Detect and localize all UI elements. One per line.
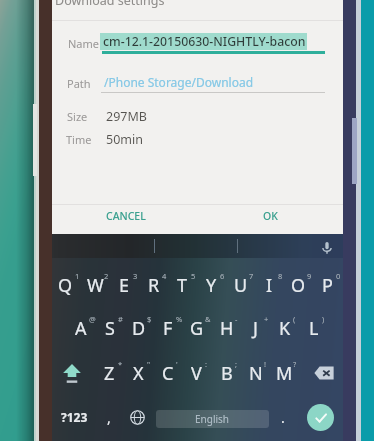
staticText: U: [234, 273, 248, 298]
button[interactable]: .: [267, 397, 299, 437]
button[interactable]: O: [284, 264, 313, 306]
button[interactable]: Enter: [307, 404, 334, 431]
button[interactable]: S: [95, 307, 124, 349]
staticText: T: [177, 273, 188, 298]
staticText: English: [195, 412, 230, 426]
button[interactable]: C: [153, 352, 182, 394]
staticText: ,: [107, 408, 111, 427]
staticText: 0: [336, 271, 341, 281]
staticText: +: [264, 314, 269, 324]
staticText: 8: [278, 271, 283, 281]
staticText: Name: [68, 36, 100, 51]
staticText: ): [322, 314, 325, 324]
button[interactable]: CANCEL: [88, 205, 164, 227]
staticText: I: [266, 273, 273, 298]
staticText: K: [279, 316, 291, 341]
staticText: ': [176, 359, 178, 369]
button[interactable]: ,: [93, 397, 125, 437]
staticText: W: [87, 273, 104, 298]
button[interactable]: G: [182, 307, 211, 349]
staticText: ?: [293, 359, 297, 369]
staticText: CANCEL: [106, 209, 146, 223]
button[interactable]: W: [81, 264, 110, 306]
button[interactable]: V: [182, 352, 211, 394]
button[interactable]: B: [212, 352, 241, 394]
staticText: J: [253, 316, 258, 341]
button[interactable]: English: [156, 410, 269, 428]
staticText: OK: [263, 209, 278, 223]
button[interactable]: T: [168, 264, 197, 306]
staticText: Size: [67, 109, 88, 124]
staticText: ?123: [61, 409, 88, 425]
staticText: (: [293, 314, 296, 324]
staticText: Time: [66, 132, 92, 147]
staticText: ": [147, 359, 151, 369]
button[interactable]: Z: [95, 352, 124, 394]
staticText: .: [281, 408, 285, 427]
button[interactable]: F: [153, 307, 182, 349]
staticText: B: [221, 361, 233, 386]
staticText: O: [291, 273, 306, 298]
button[interactable]: A: [66, 307, 95, 349]
staticText: #: [118, 314, 123, 324]
staticText: Download settings: [55, 0, 165, 9]
staticText: R: [148, 273, 160, 298]
button[interactable]: D: [124, 307, 153, 349]
staticText: Q: [58, 273, 73, 298]
button[interactable]: K: [270, 307, 299, 349]
staticText: P: [322, 273, 333, 298]
button[interactable]: U: [226, 264, 255, 306]
staticText: E: [119, 273, 130, 298]
staticText: L: [309, 316, 319, 341]
button[interactable]: ?123: [58, 397, 90, 437]
staticText: D: [132, 316, 146, 341]
staticText: Y: [206, 273, 217, 298]
button[interactable]: N: [241, 352, 270, 394]
staticText: N: [249, 361, 263, 386]
button[interactable]: Change keyboard language: [121, 401, 153, 433]
staticText: %: [176, 314, 183, 324]
staticText: Z: [104, 361, 115, 386]
button[interactable]: Y: [197, 264, 226, 306]
button[interactable]: Backspace: [309, 352, 338, 394]
staticText: 3: [133, 271, 138, 281]
staticText: /Phone Storage/Download: [104, 74, 254, 90]
staticText: S: [105, 316, 115, 341]
staticText: Path: [67, 76, 91, 91]
staticText: M: [276, 361, 293, 386]
staticText: 7: [249, 271, 254, 281]
button[interactable]: OK: [248, 205, 293, 227]
staticText: &: [205, 314, 211, 324]
staticText: 297MB: [106, 108, 147, 125]
button[interactable]: I: [255, 264, 284, 306]
staticText: 1: [75, 271, 80, 281]
button[interactable]: P: [313, 264, 342, 306]
staticText: cm-12.1-20150630-NIGHTLY-bacon: [103, 33, 306, 50]
staticText: :: [205, 359, 208, 369]
staticText: 9: [307, 271, 312, 281]
button[interactable]: H: [212, 307, 241, 349]
staticText: 50min: [106, 131, 143, 148]
button[interactable]: E: [110, 264, 139, 306]
button[interactable]: X: [124, 352, 153, 394]
staticText: V: [191, 361, 202, 386]
button[interactable]: L: [299, 307, 328, 349]
staticText: F: [163, 316, 173, 341]
staticText: H: [220, 316, 234, 341]
button[interactable]: Shift: [57, 352, 86, 394]
staticText: 2: [104, 271, 109, 281]
staticText: !: [264, 359, 267, 369]
button[interactable]: Voice input: [315, 236, 339, 260]
staticText: C: [162, 361, 174, 386]
staticText: 6: [220, 271, 225, 281]
staticText: X: [133, 361, 144, 386]
button[interactable]: M: [270, 352, 299, 394]
button[interactable]: R: [139, 264, 168, 306]
staticText: 4: [162, 271, 167, 281]
staticText: $: [147, 314, 152, 324]
button[interactable]: Q: [51, 264, 80, 306]
button[interactable]: J: [241, 307, 270, 349]
staticText: -: [235, 314, 238, 324]
staticText: 5: [191, 271, 196, 281]
staticText: *: [118, 359, 123, 369]
